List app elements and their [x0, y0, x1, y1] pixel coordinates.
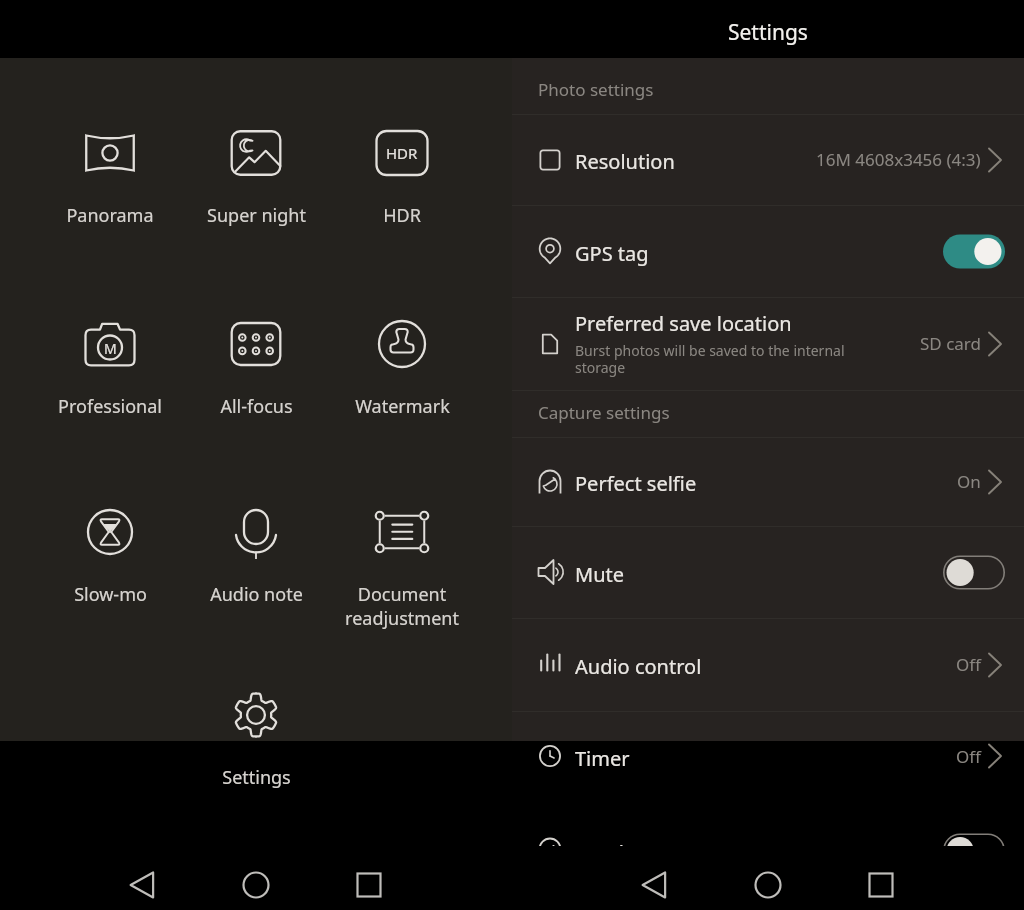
staticText: On [957, 470, 981, 493]
staticText: SD card [920, 332, 981, 355]
staticText: Photo settings [538, 78, 654, 101]
button[interactable]: Timer [512, 711, 1024, 801]
staticText: HDR [386, 143, 418, 163]
button[interactable]: All-focus [189, 316, 323, 419]
staticText: Capture settings [538, 401, 670, 424]
button[interactable]: Super night [189, 125, 323, 228]
button[interactable]: Settings [189, 687, 323, 790]
staticText: Professional [58, 394, 162, 419]
button[interactable]: HDR [335, 125, 469, 228]
staticText: Mute [575, 561, 624, 588]
staticText: Audio control [575, 653, 702, 680]
button[interactable]: Audio control [512, 618, 1024, 711]
button[interactable]: Recents [854, 858, 908, 910]
staticText: Document readjustment [345, 582, 459, 630]
staticText: Burst photos will be saved to the intern… [575, 341, 865, 377]
button[interactable]: GPS tag [512, 205, 1024, 297]
staticText: Touch to capture [575, 839, 733, 866]
staticText: Perfect selfie [575, 470, 697, 497]
staticText: M [104, 339, 117, 358]
staticText: GPS tag [575, 240, 649, 267]
button[interactable]: Mute off [943, 555, 1006, 590]
staticText: Audio note [210, 582, 303, 607]
button[interactable]: Resolution [512, 114, 1024, 205]
staticText: 16M 4608x3456 (4:3) [816, 148, 981, 171]
button[interactable]: Panorama [43, 125, 177, 228]
button[interactable]: Perfect selfie [512, 437, 1024, 526]
staticText: Resolution [575, 148, 675, 175]
button[interactable]: Home [741, 858, 795, 910]
staticText: Settings [222, 765, 291, 790]
staticText: Off [956, 745, 981, 768]
staticText: Preferred save location [575, 310, 792, 337]
button[interactable]: Back [628, 858, 682, 910]
button[interactable]: Watermark [335, 316, 469, 419]
staticText: Off [956, 653, 981, 676]
staticText: HDR [383, 203, 421, 228]
button[interactable]: Home [229, 858, 283, 910]
staticText: Super night [207, 203, 306, 228]
button[interactable]: Back [116, 858, 170, 910]
button[interactable]: GPS tag on [943, 234, 1006, 269]
button[interactable]: Document readjustment [335, 504, 469, 630]
button[interactable]: Touch to capture [512, 804, 1024, 896]
button[interactable]: Slow-mo [43, 504, 177, 607]
button[interactable]: Mute [512, 526, 1024, 618]
button[interactable]: Recents [342, 858, 396, 910]
staticText: Settings [728, 18, 808, 47]
staticText: Slow-mo [74, 582, 147, 607]
button[interactable]: M [43, 316, 177, 419]
staticText: Watermark [355, 394, 450, 419]
button[interactable]: Audio note [189, 504, 323, 607]
staticText: Timer [575, 745, 630, 772]
staticText: Panorama [66, 203, 154, 228]
button[interactable]: Preferred save location [512, 297, 1024, 390]
staticText: All-focus [220, 394, 293, 419]
button[interactable]: Touch to capture off [943, 833, 1006, 868]
